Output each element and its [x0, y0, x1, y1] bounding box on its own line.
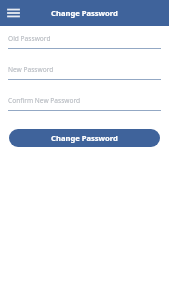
button[interactable]: Old Password: [8, 31, 161, 49]
staticText: Change Password: [0, 8, 169, 18]
staticText: Change Password: [51, 133, 118, 143]
staticText: New Password: [8, 65, 54, 74]
staticText: Old Password: [8, 34, 51, 43]
button[interactable]: Confirm New Password: [8, 93, 161, 111]
button[interactable]: New Password: [8, 62, 161, 80]
button[interactable]: Change Password: [9, 129, 160, 147]
staticText: Confirm New Password: [8, 96, 81, 105]
button[interactable]: Open navigation menu: [4, 4, 22, 22]
